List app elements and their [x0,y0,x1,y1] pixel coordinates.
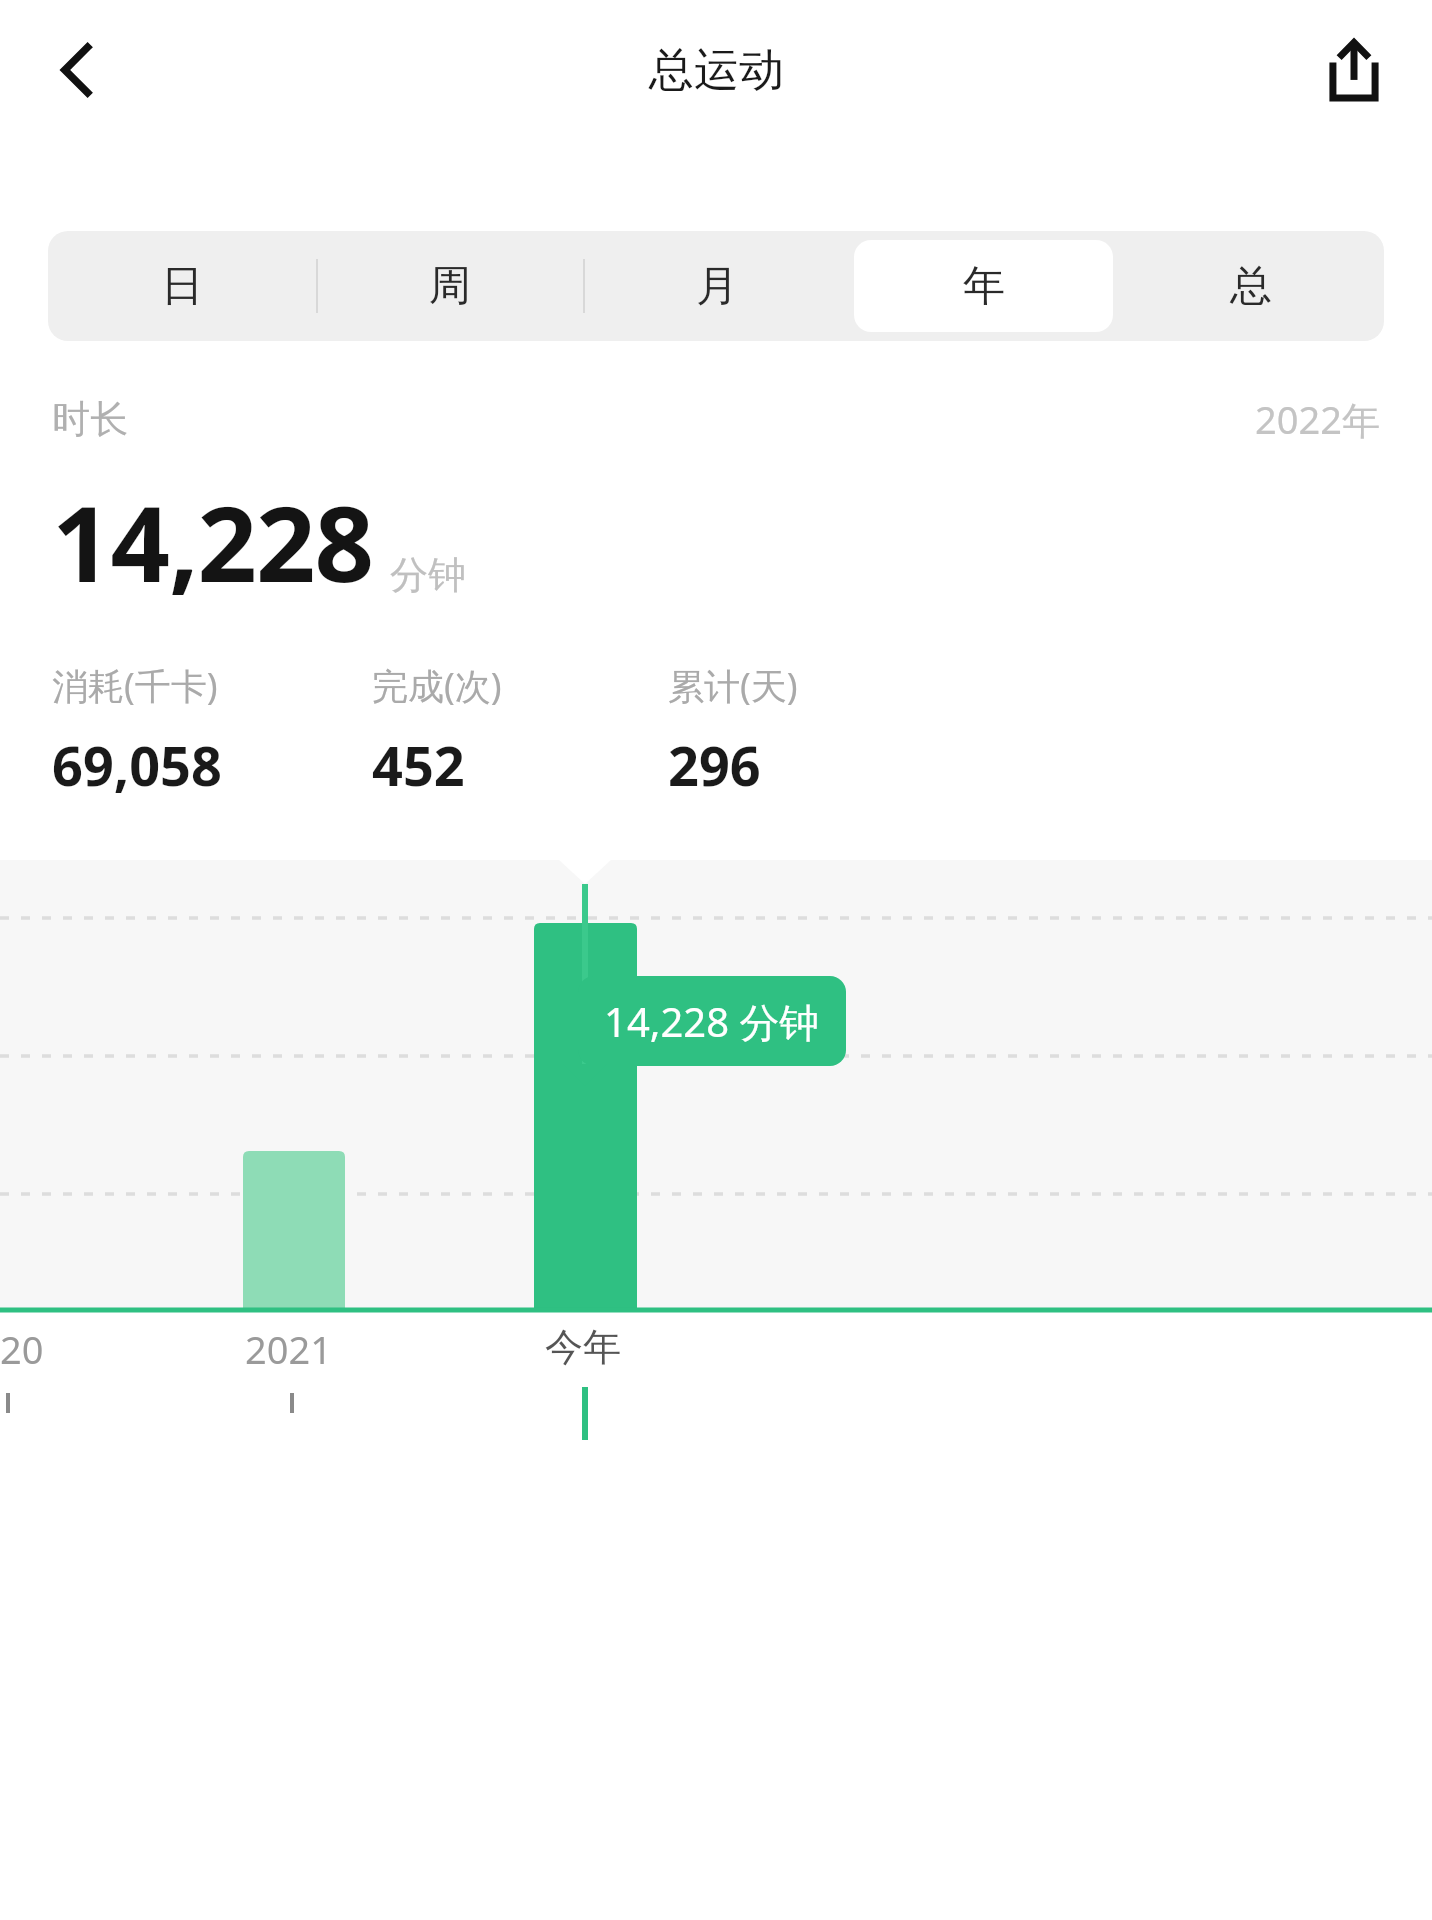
button[interactable]: 年 [850,231,1117,341]
staticText: 452 [372,728,465,802]
staticText: 累计(天) [668,661,798,710]
staticText: 69,058 [52,728,222,802]
staticText: 今年 [545,1323,621,1371]
button[interactable]: Back [30,22,126,118]
staticText: 14,228 分钟 [604,994,820,1049]
staticText: 分钟 [390,551,466,599]
staticText: 周 [429,260,471,313]
button[interactable]: 14,228 分钟 [578,976,846,1066]
staticText: 14,228 [52,471,374,613]
staticText: 2022年 [1255,393,1380,445]
button[interactable]: 月 [583,231,850,341]
button[interactable]: 日 [48,231,316,341]
staticText: 总 [1230,260,1272,313]
staticText: 2021 [245,1323,332,1375]
staticText: 月 [696,260,738,313]
staticText: 总运动 [649,42,784,99]
staticText: 完成(次) [372,661,502,710]
button[interactable]: 总 [1117,231,1384,341]
staticText: 时长 [52,395,128,443]
staticText: 年 [963,260,1005,313]
button[interactable]: Share [1306,22,1402,118]
button[interactable]: 周 [316,231,583,341]
staticText: 日 [161,260,203,313]
staticText: 20 [0,1323,44,1375]
staticText: 296 [668,728,761,802]
staticText: 消耗(千卡) [52,661,218,710]
